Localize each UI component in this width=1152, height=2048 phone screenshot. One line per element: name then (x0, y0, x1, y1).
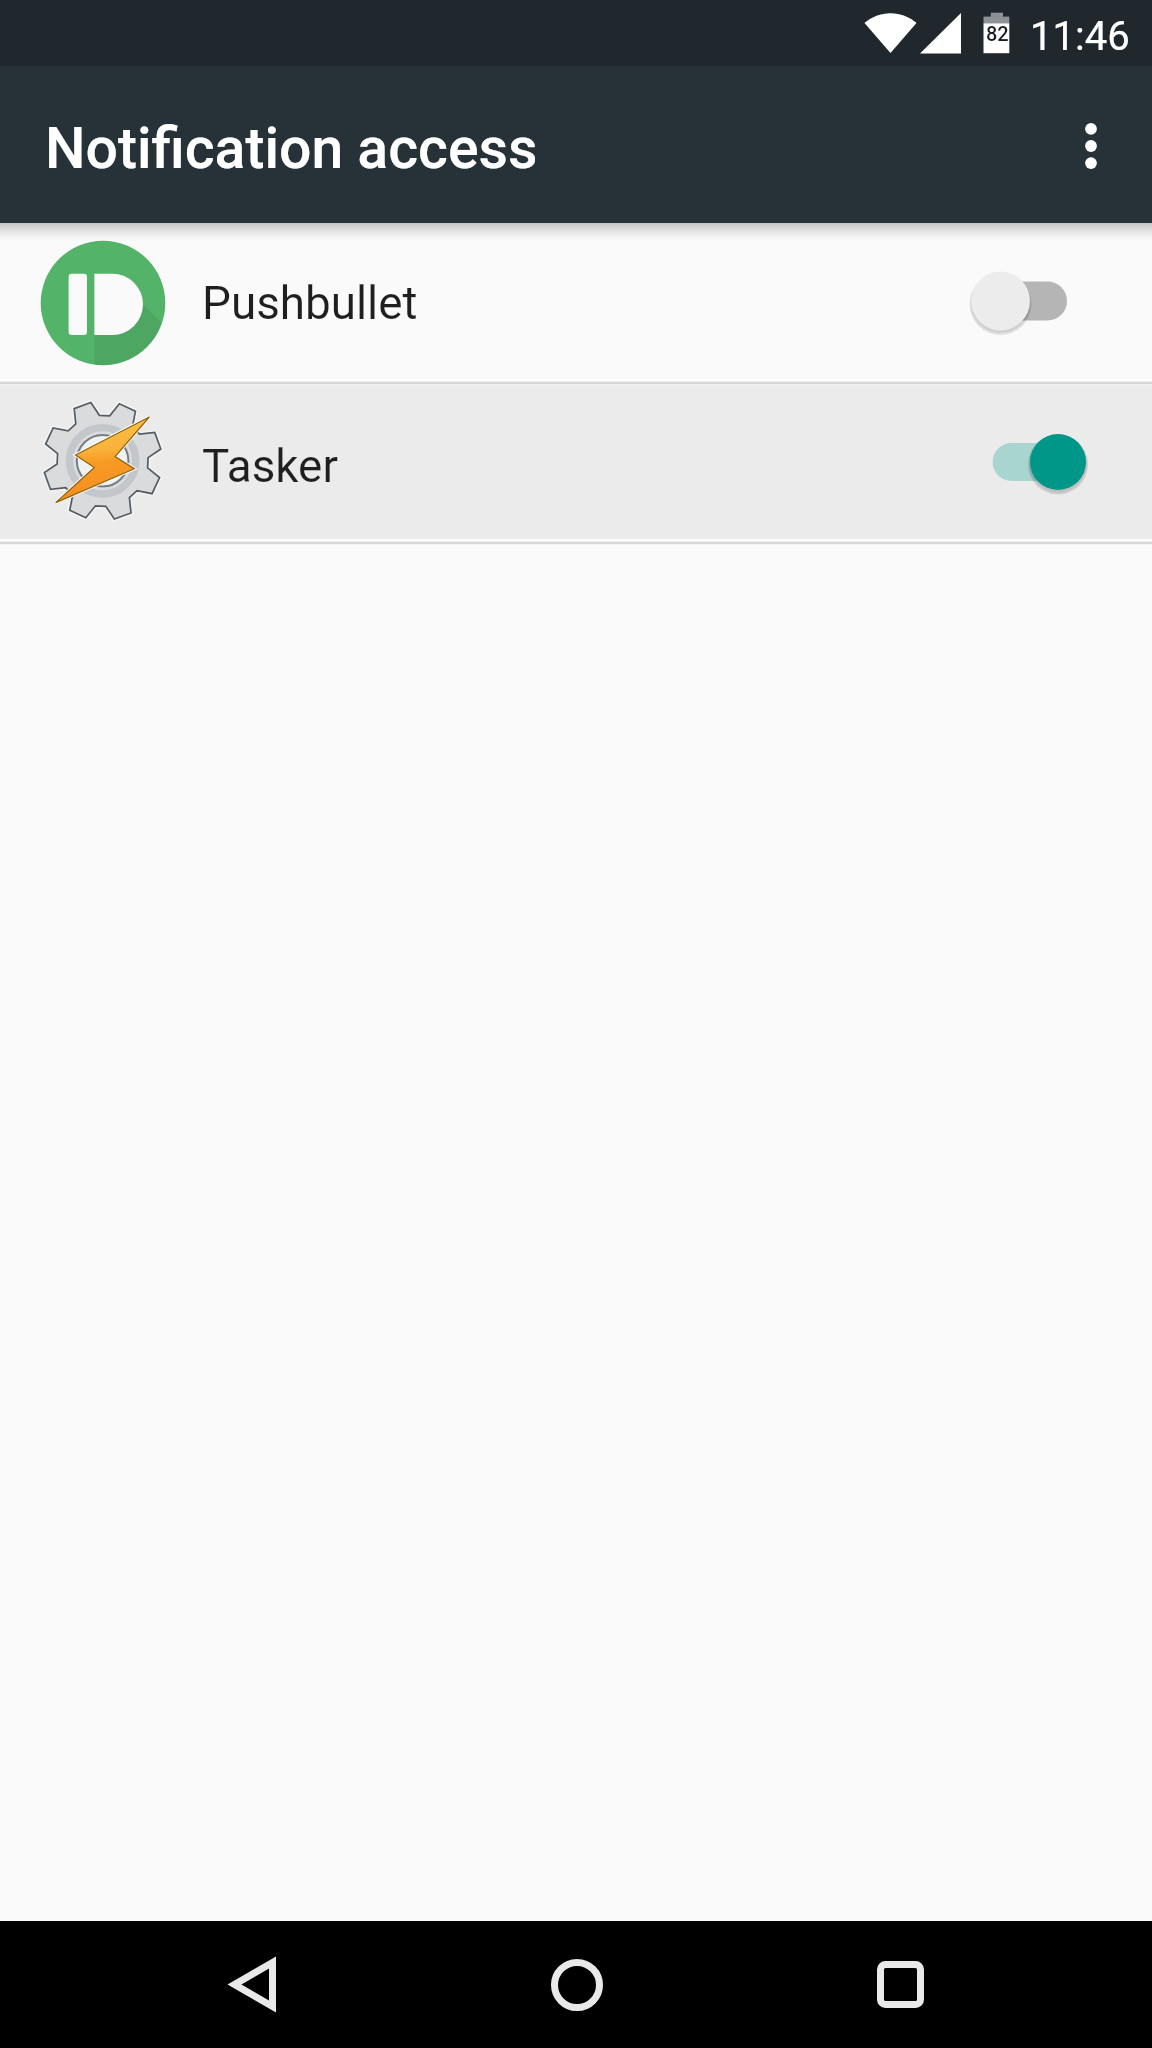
staticText: Tasker (202, 440, 338, 494)
staticText: Pushbullet (202, 277, 418, 331)
button[interactable]: Tasker (0, 385, 1152, 539)
button[interactable]: Home (513, 1921, 641, 2048)
staticText: 82 (986, 22, 1009, 45)
button[interactable]: Allow notification access for Tasker, on (936, 402, 1086, 522)
button[interactable]: Pushbullet (0, 223, 1152, 379)
button[interactable]: Allow notification access for Pushbullet… (936, 241, 1086, 361)
button[interactable]: Back (189, 1921, 317, 2048)
button[interactable]: Recent apps (836, 1921, 964, 2048)
button[interactable]: More options (1029, 66, 1152, 223)
staticText: Notification access (45, 115, 538, 182)
staticText: 11:46 (1030, 13, 1130, 60)
